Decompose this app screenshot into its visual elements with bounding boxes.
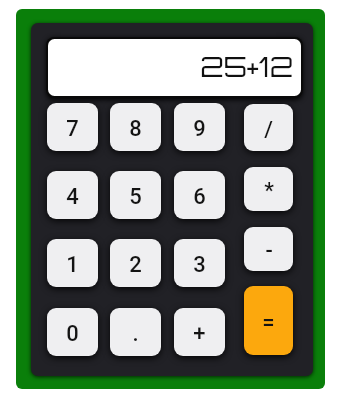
button[interactable]: 3 — [174, 239, 225, 287]
staticText: 6 — [193, 184, 206, 210]
button[interactable]: * — [244, 167, 293, 211]
staticText: 3 — [193, 252, 206, 278]
button[interactable]: - — [244, 227, 293, 271]
button[interactable]: 7 — [47, 103, 98, 151]
staticText: 1 — [66, 252, 79, 278]
button[interactable]: 5 — [110, 171, 161, 219]
button[interactable]: 4 — [47, 171, 98, 219]
button[interactable]: + — [174, 308, 225, 356]
button[interactable]: 9 — [174, 103, 225, 151]
staticText: + — [193, 321, 206, 347]
staticText: . — [132, 321, 139, 347]
staticText: 9 — [193, 116, 206, 142]
staticText: * — [264, 178, 274, 204]
staticText: 8 — [129, 116, 142, 142]
button[interactable]: . — [110, 308, 161, 356]
staticText: 5 — [129, 184, 142, 210]
staticText: - — [265, 238, 273, 264]
staticText: 25+12 — [200, 49, 293, 84]
button[interactable]: 6 — [174, 171, 225, 219]
staticText: 0 — [66, 321, 79, 347]
button[interactable]: / — [244, 104, 293, 151]
button[interactable]: 1 — [47, 239, 98, 287]
staticText: 4 — [66, 184, 79, 210]
button[interactable]: 2 — [110, 239, 161, 287]
staticText: 2 — [129, 252, 142, 278]
staticText: = — [262, 310, 275, 336]
staticText: 7 — [66, 116, 79, 142]
button[interactable]: 8 — [110, 103, 161, 151]
staticText: / — [264, 117, 273, 143]
button[interactable]: = — [244, 286, 293, 355]
button[interactable]: 0 — [47, 308, 98, 356]
